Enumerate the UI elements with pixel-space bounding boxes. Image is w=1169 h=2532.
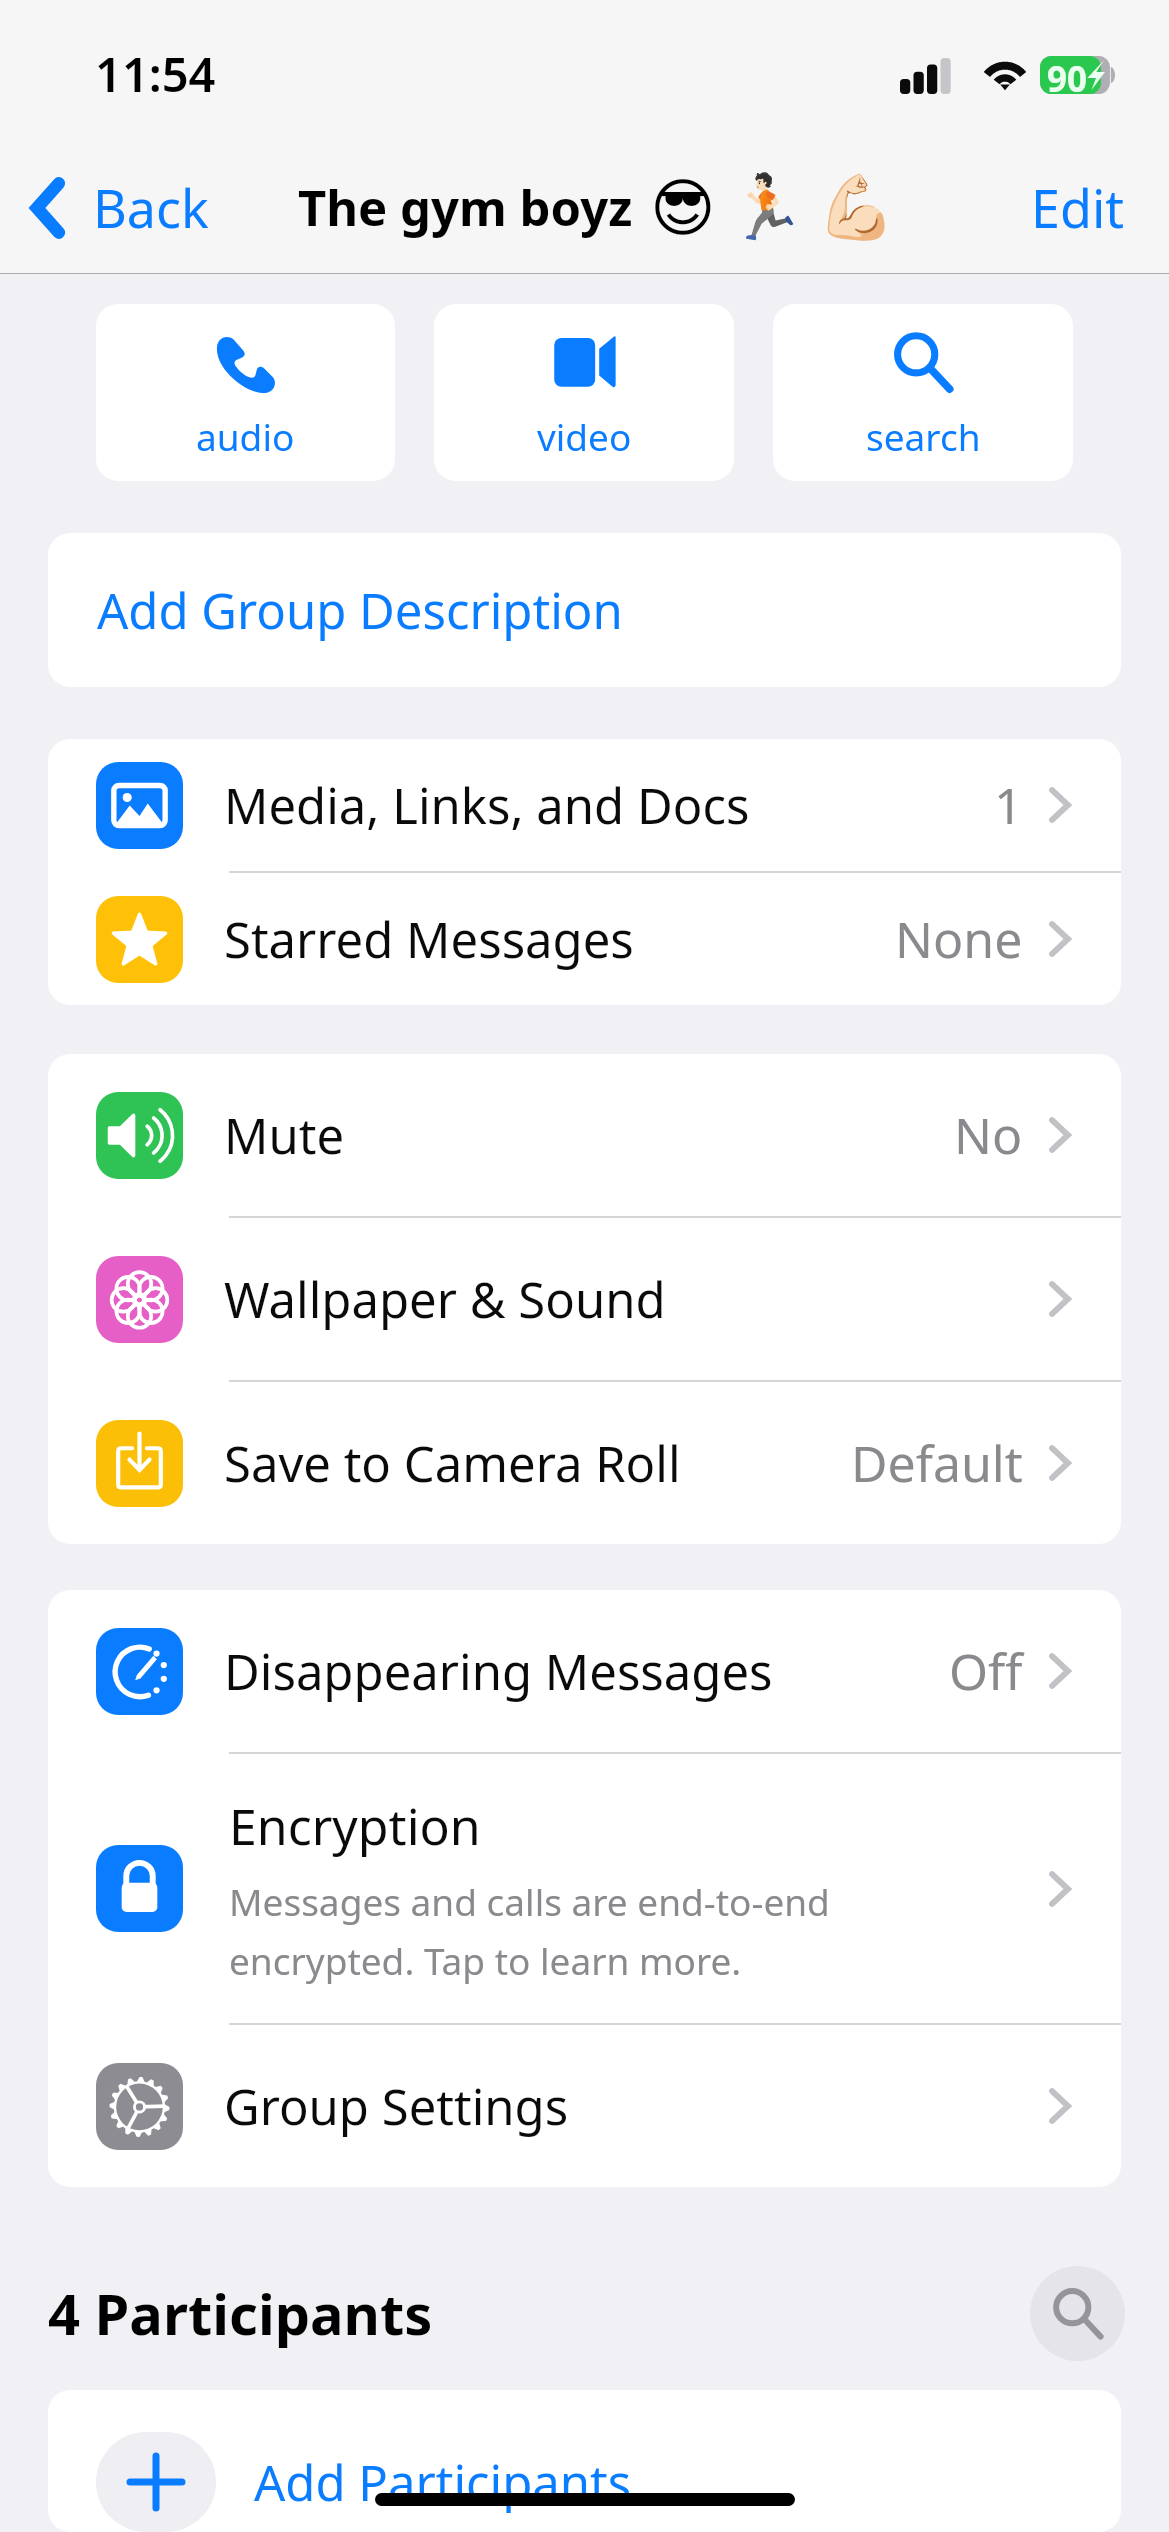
staticText: Off [949,1637,1023,1705]
staticText: 💪🏻 [817,171,896,245]
staticText: Add Group Description [97,577,623,644]
staticText: Messages and calls are end-to-end encryp… [229,1876,830,1986]
staticText: Add Participants [254,2449,632,2516]
button[interactable]: audio [96,304,395,481]
button[interactable]: Back [29,172,209,243]
button[interactable]: Wallpaper & Sound [48,1218,1121,1380]
staticText: No [954,1101,1023,1169]
staticText: Back [93,172,209,243]
button[interactable]: Edit [1013,154,1143,261]
staticText: video [537,411,632,461]
button[interactable]: video [434,304,734,481]
button[interactable]: search [773,304,1073,481]
staticText: 90 [1047,55,1088,93]
staticText: 4 Participants [48,2275,433,2351]
staticText: The gym boyz [298,174,633,241]
staticText: 🏃🏻 [727,171,806,245]
button[interactable]: Add Group Description [48,533,1121,687]
staticText: Media, Links, and Docs [224,772,750,839]
staticText: audio [196,411,295,461]
button[interactable]: Search participants [1030,2266,1125,2361]
staticText: Starred Messages [224,906,634,973]
button[interactable]: Mute [48,1054,1121,1216]
button[interactable]: Starred Messages [48,873,1121,1005]
button[interactable]: Save to Camera Roll [48,1382,1121,1544]
staticText: Wallpaper & Sound [224,1266,666,1333]
staticText: Group Settings [224,2073,569,2140]
button[interactable]: Media, Links, and Docs [48,739,1121,871]
staticText: 11:54 [95,42,216,106]
button[interactable]: Group Settings [48,2025,1121,2187]
staticText: 1 [994,771,1023,839]
staticText: Mute [224,1102,345,1169]
staticText: search [866,411,981,461]
staticText: Disappearing Messages [224,1638,773,1705]
staticText: Edit [1031,172,1125,243]
button[interactable]: Disappearing Messages [48,1590,1121,1752]
staticText: None [895,905,1023,973]
staticText: Default [851,1429,1023,1497]
staticText: Save to Camera Roll [224,1430,681,1497]
button[interactable]: Add Participants [48,2390,1121,2532]
staticText: Encryption [229,1792,481,1860]
button[interactable]: Encryption [48,1754,1121,2023]
staticText: 😎 [650,172,716,245]
